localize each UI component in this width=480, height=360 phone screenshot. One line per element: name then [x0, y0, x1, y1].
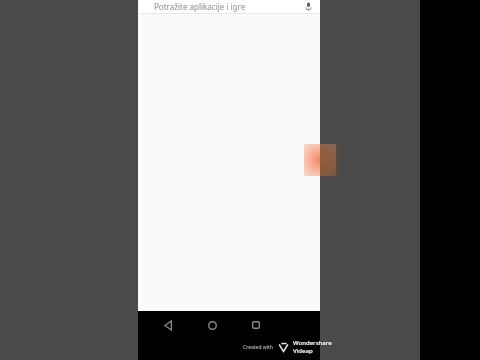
staticText: Videap: [293, 347, 313, 355]
staticText: Created with: [243, 344, 273, 351]
button[interactable]: Recent apps: [244, 313, 268, 337]
button[interactable]: Voice search: [302, 0, 315, 13]
staticText: Wondershare: [293, 339, 332, 347]
staticText: Potražite aplikacije i igre: [154, 1, 246, 12]
button[interactable]: Home: [200, 313, 224, 337]
button[interactable]: Potražite aplikacije i igre: [138, 0, 320, 13]
button[interactable]: Back: [156, 313, 180, 337]
